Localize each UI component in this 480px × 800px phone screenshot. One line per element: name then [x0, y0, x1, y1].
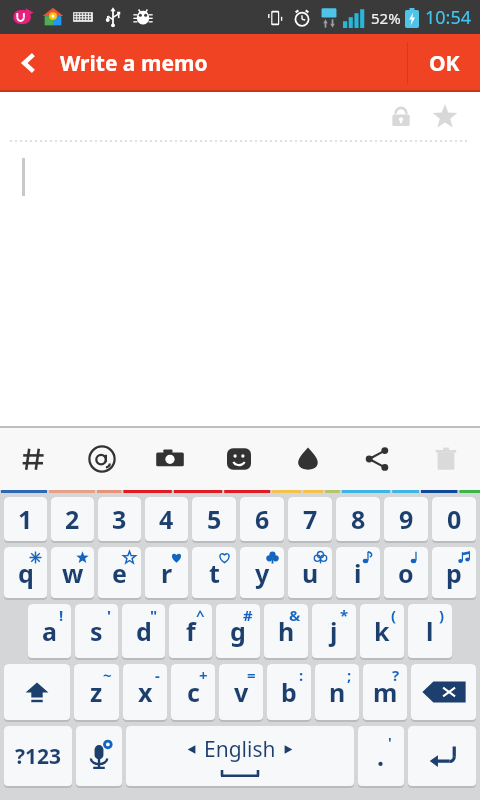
- button[interactable]: c: [171, 664, 215, 720]
- button[interactable]: Emoji: [204, 428, 273, 490]
- staticText: .: [377, 739, 385, 773]
- button[interactable]: h: [264, 604, 308, 658]
- button[interactable]: x: [123, 664, 167, 720]
- button[interactable]: m: [363, 664, 407, 720]
- staticText: 3: [112, 502, 127, 536]
- button[interactable]: a: [28, 604, 71, 658]
- staticText: 52%: [371, 8, 401, 28]
- other: Back: [18, 52, 40, 74]
- button[interactable]: Voice input: [76, 726, 122, 786]
- button[interactable]: q: [4, 547, 47, 598]
- button[interactable]: 5: [192, 497, 236, 541]
- staticText: ': [107, 605, 111, 625]
- staticText: Write a memo: [60, 49, 208, 78]
- button[interactable]: 3: [98, 497, 141, 541]
- button[interactable]: w: [51, 547, 94, 598]
- staticText: i: [354, 556, 362, 590]
- staticText: w: [62, 556, 84, 590]
- staticText: q: [18, 556, 34, 590]
- button[interactable]: d: [122, 604, 165, 658]
- staticText: l: [426, 614, 434, 648]
- staticText: ^: [196, 605, 205, 625]
- staticText: 5: [207, 502, 222, 536]
- staticText: 1: [18, 502, 33, 536]
- staticText: ?: [392, 665, 400, 685]
- staticText: OK: [429, 49, 460, 78]
- button[interactable]: 1: [4, 497, 47, 541]
- staticText: d: [136, 614, 152, 648]
- button[interactable]: Camera: [136, 428, 204, 490]
- button[interactable]: r: [145, 547, 188, 598]
- button[interactable]: f: [169, 604, 212, 658]
- button[interactable]: s: [75, 604, 118, 658]
- staticText: k: [374, 614, 390, 648]
- staticText: s: [90, 614, 103, 648]
- staticText: 7: [303, 502, 318, 536]
- button[interactable]: OK: [408, 34, 480, 92]
- button[interactable]: Mention: [68, 428, 136, 490]
- button[interactable]: Shift: [4, 664, 70, 720]
- button[interactable]: Delete: [411, 428, 480, 490]
- staticText: ~: [103, 665, 112, 685]
- button[interactable]: English: [126, 726, 354, 786]
- button[interactable]: o: [384, 547, 428, 598]
- staticText: -: [155, 665, 160, 685]
- button[interactable]: 8: [336, 497, 380, 541]
- button[interactable]: 6: [240, 497, 284, 541]
- button[interactable]: Enter: [408, 726, 476, 786]
- staticText: ?123: [15, 742, 62, 771]
- staticText: u: [302, 556, 319, 590]
- staticText: ": [150, 605, 158, 625]
- staticText: ): [439, 605, 445, 625]
- button[interactable]: Hashtag: [0, 428, 68, 490]
- button[interactable]: ?123: [4, 726, 72, 786]
- staticText: 6: [255, 502, 270, 536]
- button[interactable]: i: [336, 547, 380, 598]
- staticText: &: [289, 605, 301, 625]
- button[interactable]: n: [315, 664, 359, 720]
- staticText: t: [209, 556, 220, 590]
- staticText: 4: [159, 502, 174, 536]
- button[interactable]: t: [192, 547, 236, 598]
- button[interactable]: u: [288, 547, 332, 598]
- staticText: :: [299, 665, 304, 685]
- staticText: n: [329, 675, 346, 709]
- button[interactable]: y: [240, 547, 284, 598]
- button[interactable]: l: [408, 604, 452, 658]
- button[interactable]: Ink: [273, 428, 342, 490]
- staticText: v: [234, 675, 249, 709]
- staticText: =: [247, 665, 256, 685]
- staticText: g: [230, 614, 246, 648]
- button[interactable]: Backspace: [411, 664, 476, 720]
- button[interactable]: 9: [384, 497, 428, 541]
- staticText: r: [161, 556, 173, 590]
- button[interactable]: e: [98, 547, 141, 598]
- button[interactable]: b: [267, 664, 311, 720]
- button[interactable]: g: [216, 604, 260, 658]
- staticText: a: [42, 614, 57, 648]
- button[interactable]: 7: [288, 497, 332, 541]
- button[interactable]: z: [74, 664, 119, 720]
- button[interactable]: Lock memo: [382, 97, 420, 135]
- button[interactable]: Share: [342, 428, 411, 490]
- button[interactable]: k: [360, 604, 404, 658]
- staticText: h: [278, 614, 295, 648]
- staticText: #: [243, 605, 253, 625]
- staticText: x: [138, 675, 153, 709]
- button[interactable]: p: [432, 547, 476, 598]
- button[interactable]: Favourite: [426, 97, 464, 135]
- staticText: 2: [65, 502, 80, 536]
- button[interactable]: 0: [432, 497, 476, 541]
- staticText: 10:54: [425, 5, 472, 30]
- staticText: 0: [447, 502, 462, 536]
- staticText: z: [90, 675, 103, 709]
- staticText: f: [186, 614, 196, 648]
- button[interactable]: v: [219, 664, 263, 720]
- staticText: ;: [347, 665, 352, 685]
- button[interactable]: .: [358, 726, 404, 786]
- button[interactable]: Back: [0, 34, 407, 92]
- button[interactable]: j: [312, 604, 356, 658]
- button[interactable]: 4: [145, 497, 188, 541]
- button[interactable]: 2: [51, 497, 94, 541]
- staticText: 9: [399, 502, 414, 536]
